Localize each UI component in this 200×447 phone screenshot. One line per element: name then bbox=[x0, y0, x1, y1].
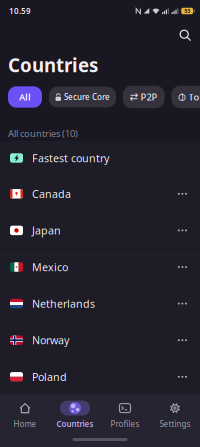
button[interactable]: Canada bbox=[0, 176, 200, 212]
staticText: Netherlands bbox=[32, 296, 95, 311]
staticText: P2P bbox=[140, 91, 157, 103]
button[interactable]: Home bbox=[0, 401, 50, 429]
staticText: Countries bbox=[8, 53, 98, 77]
button[interactable]: More options bbox=[178, 339, 187, 341]
staticText: Tor bbox=[188, 91, 200, 103]
button[interactable]: Mexico bbox=[0, 249, 200, 285]
button[interactable]: Netherlands bbox=[0, 286, 200, 321]
button[interactable]: All bbox=[8, 86, 42, 108]
staticText: Settings bbox=[159, 419, 190, 429]
button[interactable]: More options bbox=[178, 193, 187, 195]
button[interactable]: Countries bbox=[50, 401, 100, 429]
staticText: 53 bbox=[184, 7, 190, 15]
button[interactable]: Japan bbox=[0, 213, 200, 248]
button[interactable]: Secure Core bbox=[49, 87, 116, 107]
staticText: Profiles bbox=[110, 419, 139, 429]
button[interactable]: Tor bbox=[171, 86, 200, 108]
button[interactable]: More options bbox=[178, 376, 187, 378]
button[interactable]: Fastest country bbox=[0, 141, 200, 175]
staticText: All bbox=[19, 91, 31, 103]
button[interactable]: Poland bbox=[0, 359, 200, 395]
button[interactable]: Search bbox=[179, 29, 200, 42]
staticText: All countries (10) bbox=[8, 127, 78, 140]
button[interactable]: Settings bbox=[150, 401, 200, 429]
staticText: Poland bbox=[32, 370, 67, 384]
staticText: 10.59 bbox=[9, 6, 31, 16]
button[interactable]: More options bbox=[178, 229, 187, 231]
staticText: Mexico bbox=[32, 260, 68, 274]
button[interactable]: P2P bbox=[123, 86, 164, 108]
staticText: Home bbox=[13, 419, 36, 429]
staticText: Canada bbox=[32, 187, 71, 201]
staticText: Fastest country bbox=[32, 151, 109, 165]
button[interactable]: Norway bbox=[0, 322, 200, 358]
staticText: Countries bbox=[56, 419, 93, 429]
button[interactable]: More options bbox=[178, 303, 187, 305]
button[interactable]: Profiles bbox=[100, 401, 150, 429]
staticText: Norway bbox=[32, 333, 69, 347]
staticText: Japan bbox=[32, 223, 61, 237]
button[interactable]: More options bbox=[178, 266, 187, 268]
staticText: Secure Core bbox=[64, 92, 110, 102]
